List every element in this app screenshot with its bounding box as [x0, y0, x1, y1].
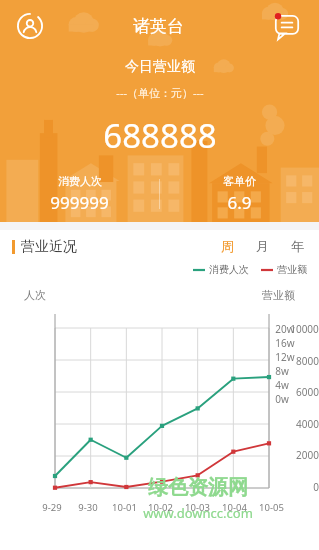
staticText: 4000 [296, 417, 319, 431]
staticText: 10-02 [148, 501, 173, 514]
staticText: 年 [291, 238, 304, 254]
button[interactable]: 消费人次 [0, 174, 159, 214]
staticText: 今日营业额 [125, 58, 195, 76]
staticText: www.downcc.com [143, 504, 253, 522]
staticText: 客单价 [223, 174, 256, 188]
staticText: 10-01 [112, 501, 137, 514]
staticText: 9-29 [42, 501, 62, 514]
button[interactable]: 客单价 [160, 174, 319, 214]
staticText: 10-05 [259, 501, 284, 514]
staticText: 8w [275, 364, 289, 378]
staticText: 营业额 [262, 288, 295, 302]
staticText: 20w [275, 322, 295, 336]
staticText: 绿色资源网 [148, 475, 248, 500]
button[interactable]: 月 [253, 236, 272, 256]
staticText: 营业近况 [21, 238, 77, 256]
staticText: 月 [256, 238, 269, 254]
staticText: 10000 [290, 322, 319, 336]
staticText: 10-03 [185, 501, 210, 514]
staticText: ---（单位：元）--- [116, 85, 204, 100]
button[interactable]: 周 [218, 236, 237, 256]
staticText: 消费人次 [209, 263, 249, 276]
staticText: 0 [313, 480, 319, 494]
staticText: 688888 [103, 113, 217, 158]
staticText: 0w [275, 392, 289, 406]
staticText: 6.9 [227, 191, 252, 214]
button[interactable]: 年 [288, 236, 307, 256]
staticText: 9-30 [78, 501, 98, 514]
button[interactable]: Messages [267, 6, 307, 46]
button[interactable]: Profile [10, 6, 50, 46]
staticText: 人次 [24, 288, 46, 302]
staticText: 10-04 [222, 501, 247, 514]
staticText: 周 [221, 238, 234, 254]
staticText: 营业额 [277, 263, 307, 276]
staticText: 4w [275, 378, 289, 392]
staticText: 2000 [296, 448, 319, 462]
staticText: 12w [275, 350, 295, 364]
staticText: 消费人次 [58, 174, 102, 188]
staticText: 8000 [296, 354, 319, 368]
staticText: 999999 [50, 191, 109, 214]
staticText: 16w [275, 336, 295, 350]
staticText: 6000 [296, 385, 319, 399]
staticText: 诸英台 [133, 16, 184, 37]
